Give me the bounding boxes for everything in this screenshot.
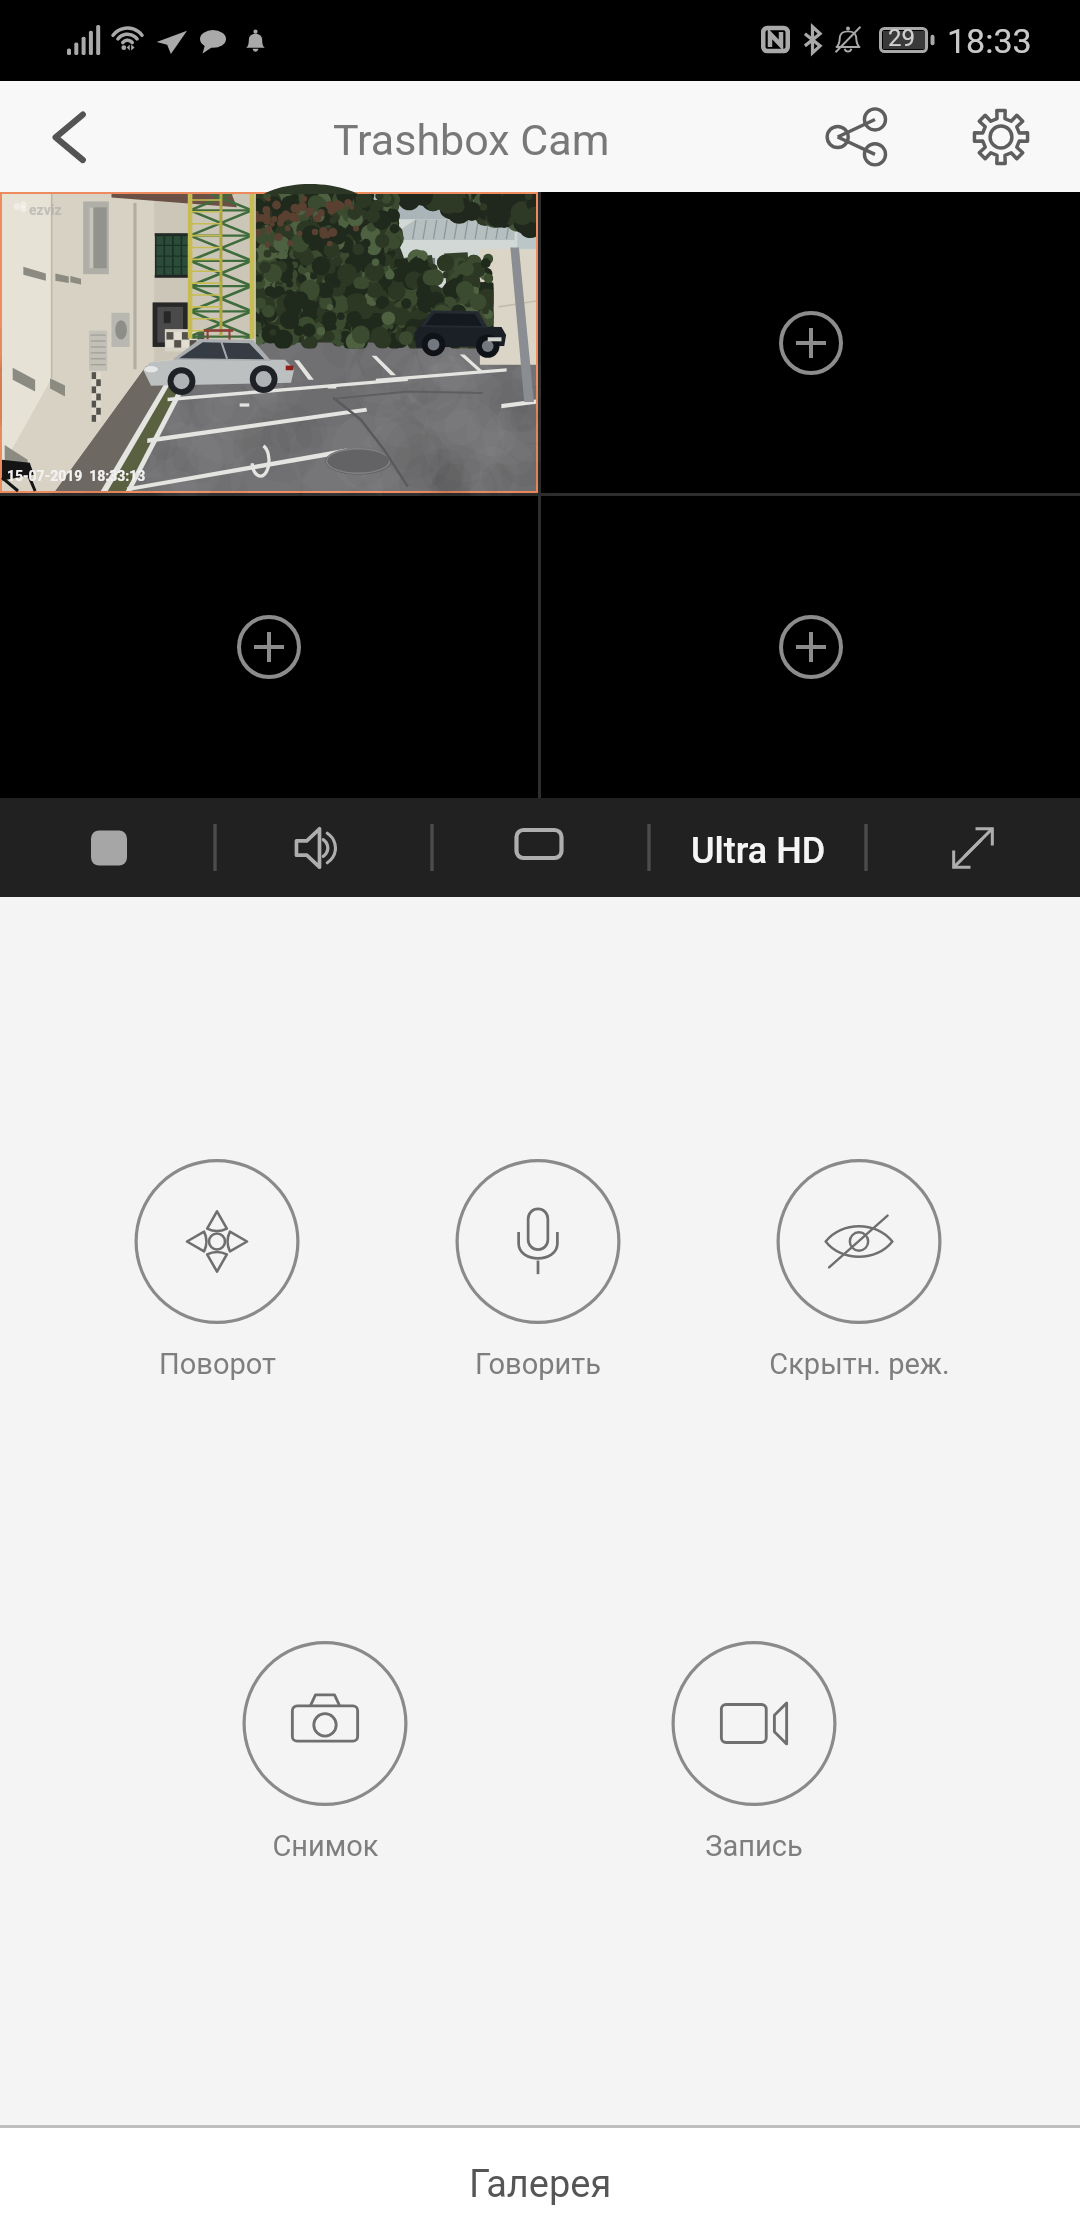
staticText: Поворот bbox=[159, 1347, 276, 1381]
staticText: Говорить bbox=[475, 1347, 601, 1381]
staticText: Скрытн. реж. bbox=[769, 1347, 950, 1381]
staticText: ezviz bbox=[29, 202, 62, 218]
button[interactable]: Share bbox=[806, 81, 907, 192]
button[interactable]: Add camera bbox=[0, 496, 538, 798]
staticText: Снимок bbox=[272, 1829, 379, 1863]
button[interactable]: Запись bbox=[644, 1641, 864, 1866]
staticText: Галерея bbox=[469, 2162, 612, 2207]
button[interactable]: Add camera bbox=[541, 496, 1080, 798]
button[interactable]: Снимок bbox=[215, 1641, 435, 1866]
button[interactable]: Stop bbox=[0, 798, 215, 897]
button[interactable]: Fullscreen bbox=[866, 798, 1080, 897]
staticText: Ultra HD bbox=[691, 830, 826, 872]
staticText: Запись bbox=[705, 1829, 803, 1863]
button[interactable]: Говорить bbox=[428, 1159, 648, 1384]
button[interactable]: Settings bbox=[950, 81, 1051, 192]
button[interactable]: Aspect ratio bbox=[432, 798, 649, 897]
button[interactable]: Поворот bbox=[107, 1159, 327, 1384]
staticText: 29 bbox=[888, 24, 915, 52]
button[interactable]: Sound bbox=[215, 798, 432, 897]
button[interactable]: Add camera bbox=[541, 192, 1080, 493]
button[interactable]: Галерея bbox=[0, 2128, 1080, 2240]
staticText: 18:33 bbox=[947, 21, 1032, 61]
staticText: Trashbox Cam bbox=[333, 115, 610, 165]
staticText: 15-07-2019 18:33:13 bbox=[7, 468, 146, 484]
button[interactable]: Quality bbox=[649, 798, 866, 897]
button[interactable]: 15-07-2019 18:33:13 bbox=[0, 192, 538, 493]
button[interactable]: Back bbox=[14, 81, 110, 192]
button[interactable]: Скрытн. реж. bbox=[749, 1159, 969, 1384]
